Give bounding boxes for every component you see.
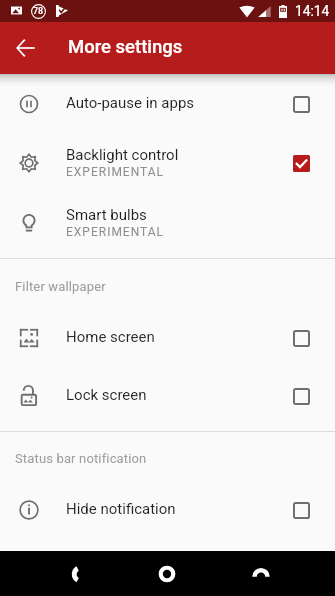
button[interactable]: Backlight control	[287, 149, 315, 177]
button[interactable]: Home screen	[0, 310, 335, 366]
button[interactable]: Smart bulbs	[0, 195, 335, 251]
button[interactable]: Home	[144, 551, 190, 596]
button[interactable]: Navigate up	[9, 31, 43, 65]
staticText: More settings	[68, 36, 183, 58]
button[interactable]: Recent apps	[238, 551, 284, 596]
staticText: Hide notification	[66, 500, 176, 518]
button[interactable]: Hide notification	[0, 482, 335, 538]
button[interactable]: Lock screen	[0, 368, 335, 424]
staticText: Status bar notification	[15, 451, 147, 466]
staticText: Filter wallpaper	[15, 279, 106, 294]
button[interactable]: Auto-pause in apps	[287, 90, 315, 118]
staticText: Home screen	[66, 328, 155, 346]
staticText: 14:14	[295, 3, 330, 19]
staticText: 78	[33, 6, 44, 17]
button[interactable]: Lock screen	[287, 382, 315, 410]
button[interactable]: Back	[56, 551, 102, 596]
staticText: EXPERIMENTAL	[66, 165, 165, 179]
staticText: Backlight control	[66, 146, 179, 164]
staticText: Smart bulbs	[66, 206, 147, 224]
button[interactable]: Hide notification	[287, 496, 315, 524]
staticText: Auto-pause in apps	[66, 94, 195, 112]
staticText: Lock screen	[66, 386, 147, 404]
button[interactable]: Backlight control	[0, 135, 335, 191]
button[interactable]: Home screen	[287, 324, 315, 352]
button[interactable]: Auto-pause in apps	[0, 76, 335, 132]
staticText: EXPERIMENTAL	[66, 225, 165, 239]
